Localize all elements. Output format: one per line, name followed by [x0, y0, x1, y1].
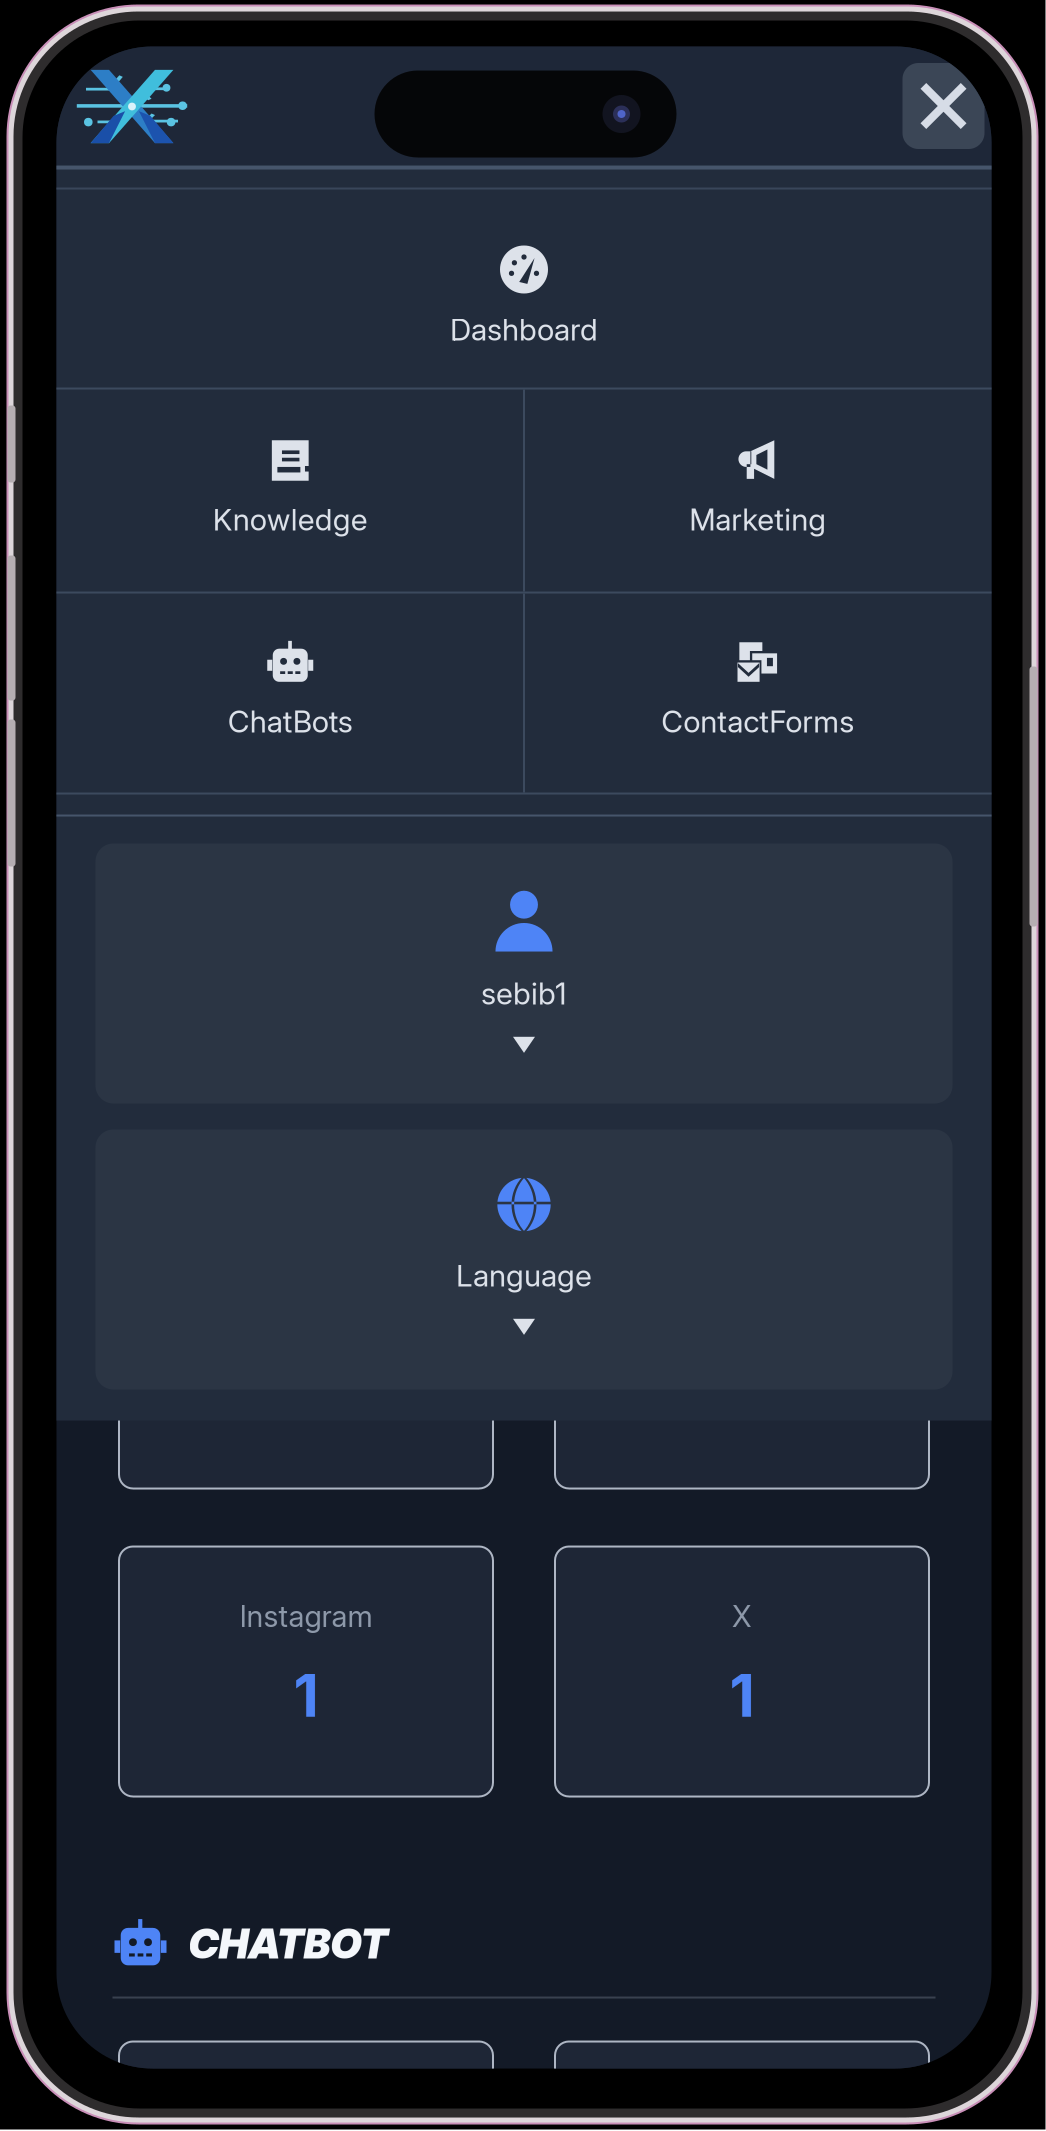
button[interactable]: Close: [902, 63, 984, 149]
button[interactable]: [555, 2041, 929, 2131]
staticText: ChatBots: [228, 703, 353, 740]
button[interactable]: Knowledge: [57, 389, 523, 591]
staticText: 0: [286, 1352, 326, 1423]
button[interactable]: Home: [56, 46, 207, 165]
staticText: Knowledge: [213, 501, 368, 538]
staticText: Dashboard: [450, 311, 598, 348]
button[interactable]: Language: [95, 1129, 952, 1389]
button[interactable]: Dashboard: [56, 189, 991, 387]
button[interactable]: sebib1: [95, 843, 952, 1103]
staticText: 1: [729, 1660, 754, 1731]
button[interactable]: Marketing: [525, 389, 990, 591]
button[interactable]: Facebook: [119, 1238, 493, 1488]
staticText: Language: [456, 1257, 592, 1294]
staticText: 1: [293, 1660, 318, 1731]
staticText: X: [732, 1598, 752, 1634]
button[interactable]: [119, 2041, 493, 2131]
button[interactable]: X: [555, 1546, 929, 1796]
staticText: CHATBOT: [188, 1918, 387, 1968]
staticText: ContactForms: [661, 703, 854, 740]
staticText: Instagram: [239, 1598, 372, 1634]
staticText: sebib1: [481, 975, 567, 1012]
button[interactable]: ChatBots: [57, 593, 523, 792]
button[interactable]: Instagram: [119, 1546, 493, 1796]
button[interactable]: LinkedIn: [555, 1238, 929, 1488]
staticText: Marketing: [689, 501, 826, 538]
staticText: 0: [722, 1352, 762, 1423]
button[interactable]: ContactForms: [525, 593, 990, 792]
